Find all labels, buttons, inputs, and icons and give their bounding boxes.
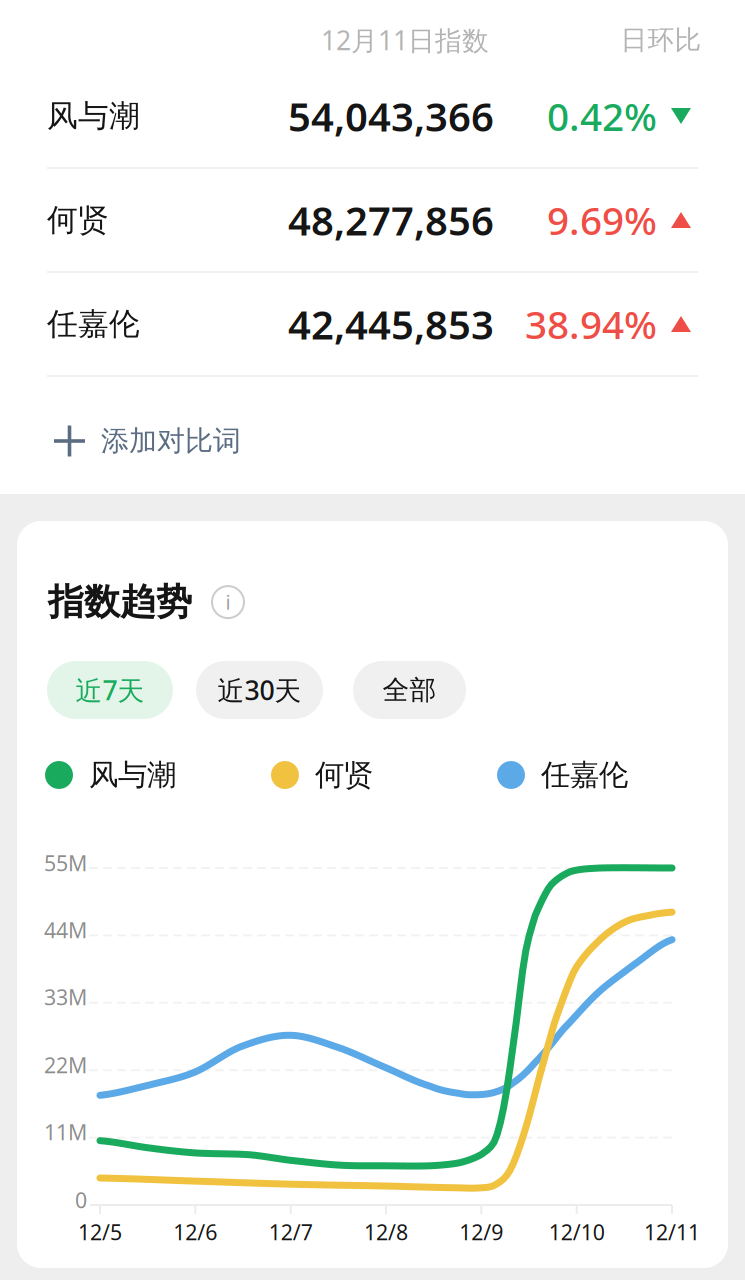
staticText: 42,445,853 bbox=[288, 297, 494, 350]
button[interactable]: 任嘉伦 bbox=[0, 272, 745, 376]
staticText: 12/8 bbox=[364, 1218, 408, 1246]
button[interactable]: 风与潮 bbox=[0, 64, 745, 168]
staticText: 38.94% bbox=[525, 298, 657, 350]
button[interactable]: 全部 bbox=[353, 661, 466, 719]
staticText: 近7天 bbox=[75, 672, 144, 708]
staticText: 54,043,366 bbox=[288, 89, 494, 142]
staticText: 添加对比词 bbox=[101, 424, 241, 458]
staticText: 0 bbox=[75, 1186, 87, 1214]
staticText: i bbox=[225, 589, 230, 615]
button[interactable]: 近30天 bbox=[196, 661, 323, 719]
staticText: 0.42% bbox=[547, 90, 657, 142]
staticText: 48,277,856 bbox=[288, 193, 494, 246]
staticText: 12/10 bbox=[549, 1218, 605, 1246]
button[interactable]: 添加对比词 bbox=[0, 386, 745, 496]
staticText: 全部 bbox=[382, 674, 436, 706]
staticText: 44M bbox=[44, 916, 87, 944]
staticText: 日环比 bbox=[620, 24, 701, 56]
staticText: 任嘉伦 bbox=[47, 305, 140, 343]
staticText: 12/9 bbox=[459, 1218, 503, 1246]
button[interactable]: 近7天 bbox=[47, 661, 173, 719]
staticText: 55M bbox=[44, 849, 87, 877]
staticText: 任嘉伦 bbox=[541, 757, 628, 793]
staticText: 风与潮 bbox=[89, 757, 176, 793]
staticText: 12/6 bbox=[173, 1218, 217, 1246]
button[interactable]: 何贤 bbox=[0, 168, 745, 272]
staticText: 12/11 bbox=[644, 1218, 700, 1246]
staticText: 何贤 bbox=[47, 201, 109, 239]
staticText: 近30天 bbox=[217, 672, 301, 708]
staticText: 12月11日指数 bbox=[321, 22, 489, 58]
staticText: 11M bbox=[44, 1118, 87, 1146]
staticText: 何贤 bbox=[315, 757, 373, 793]
staticText: 指数趋势 bbox=[48, 580, 192, 624]
staticText: 22M bbox=[44, 1051, 87, 1079]
staticText: 风与潮 bbox=[47, 97, 140, 135]
staticText: 12/5 bbox=[78, 1218, 122, 1246]
staticText: 33M bbox=[44, 983, 87, 1011]
staticText: 9.69% bbox=[547, 194, 657, 246]
staticText: 12/7 bbox=[269, 1218, 313, 1246]
button[interactable]: About the index trend bbox=[212, 586, 244, 618]
